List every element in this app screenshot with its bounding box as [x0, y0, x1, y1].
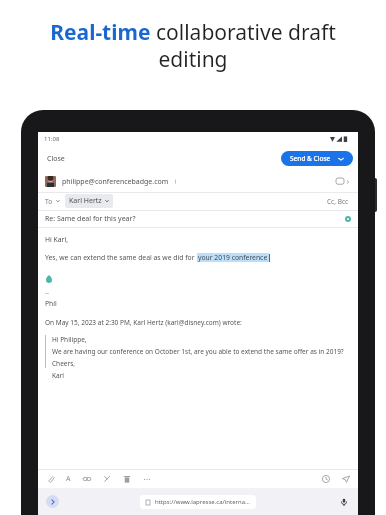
- button[interactable]: Signature: [101, 473, 112, 484]
- button[interactable]: Voice input: [337, 495, 350, 508]
- staticText: Cheers,: [52, 359, 75, 368]
- button[interactable]: Comments: [334, 176, 352, 188]
- button[interactable]: Cc, Bcc: [325, 195, 351, 208]
- button[interactable]: Link: [81, 473, 92, 484]
- staticText: philippe@conferencebadge.com: [62, 177, 169, 187]
- staticText: your 2019 conference: [198, 253, 268, 262]
- button[interactable]: https://www.lapresse.ca/interna...: [140, 495, 256, 509]
- staticText: Karl: [52, 371, 65, 380]
- button[interactable]: Schedule send: [320, 473, 331, 484]
- staticText: Phil: [45, 299, 57, 308]
- staticText: A: [66, 474, 71, 484]
- button[interactable]: Close: [45, 152, 67, 166]
- staticText: To: [45, 197, 53, 206]
- button[interactable]: Send & Close: [281, 151, 353, 166]
- staticText: 11:08: [44, 135, 60, 143]
- button[interactable]: More: [141, 473, 152, 484]
- staticText: https://www.lapresse.ca/interna...: [155, 498, 250, 506]
- button[interactable]: Delete: [121, 473, 132, 484]
- button[interactable]: Send: [340, 473, 351, 484]
- staticText: Yes, we can extend the same deal as we d…: [45, 253, 197, 262]
- staticText: Close: [47, 154, 65, 164]
- staticText: Hi Karl,: [45, 235, 68, 244]
- staticText: Hi Philippe,: [52, 335, 87, 344]
- staticText: On May 15, 2023 at 2:30 PM, Karl Hertz (…: [45, 318, 242, 327]
- button[interactable]: Karl Hertz: [65, 194, 113, 208]
- staticText: Real-time collaborative draft editing: [24, 18, 362, 73]
- staticText: --: [45, 289, 49, 297]
- button[interactable]: Expand suggestions: [46, 495, 59, 508]
- staticText: Re: Same deal for this year?: [45, 214, 136, 224]
- button[interactable]: Attach: [45, 473, 56, 484]
- staticText: Cc, Bcc: [327, 197, 349, 206]
- staticText: We are having our conference on October …: [52, 347, 344, 356]
- staticText: Karl Hertz: [69, 196, 102, 206]
- staticText: Send & Close: [290, 154, 331, 163]
- button[interactable]: A: [65, 473, 72, 485]
